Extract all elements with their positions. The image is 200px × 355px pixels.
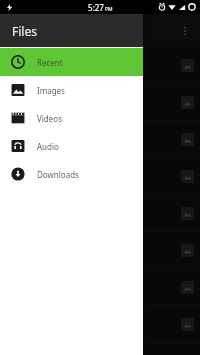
button[interactable]: Audio <box>0 132 143 160</box>
staticText: Screenshot_18.png <box>12 319 181 330</box>
button[interactable]: Screenshot_21.png <box>0 195 200 231</box>
button[interactable]: Screenshot_06.png <box>0 269 200 305</box>
staticText: Screenshot_21.png <box>12 208 181 219</box>
staticText: Screenshot_54.png <box>12 134 181 145</box>
button[interactable]: More options <box>174 20 196 42</box>
staticText: Screenshot_32.png <box>12 171 181 182</box>
staticText: Audio <box>37 141 59 152</box>
button[interactable]: Videos <box>0 104 143 132</box>
button[interactable]: Screenshot_54.png <box>0 121 200 157</box>
staticText: Images <box>37 85 65 96</box>
button[interactable]: Screenshot_25.png <box>0 84 200 120</box>
staticText: Downloads <box>37 169 79 180</box>
button[interactable]: Screenshot_32.png <box>0 158 200 194</box>
button[interactable]: Images <box>0 76 143 104</box>
staticText: Files <box>12 23 37 39</box>
button[interactable]: Screenshot_33.png <box>0 47 200 83</box>
staticText: PM <box>105 6 113 13</box>
button[interactable]: Screenshot_27.png <box>0 232 200 268</box>
staticText: Screenshot_33.png <box>12 60 181 71</box>
staticText: Screenshot_06.png <box>12 282 181 293</box>
button[interactable]: Recent <box>0 48 143 76</box>
staticText: Screenshot_25.png <box>12 97 181 108</box>
button[interactable]: Files <box>0 14 143 47</box>
staticText: 5:27 <box>88 2 104 13</box>
staticText: Videos <box>37 113 62 124</box>
staticText: Recent <box>37 57 63 68</box>
button[interactable]: Screenshot_18.png <box>0 306 200 342</box>
staticText: Screenshot_27.png <box>12 245 181 256</box>
button[interactable]: Downloads <box>0 160 143 188</box>
